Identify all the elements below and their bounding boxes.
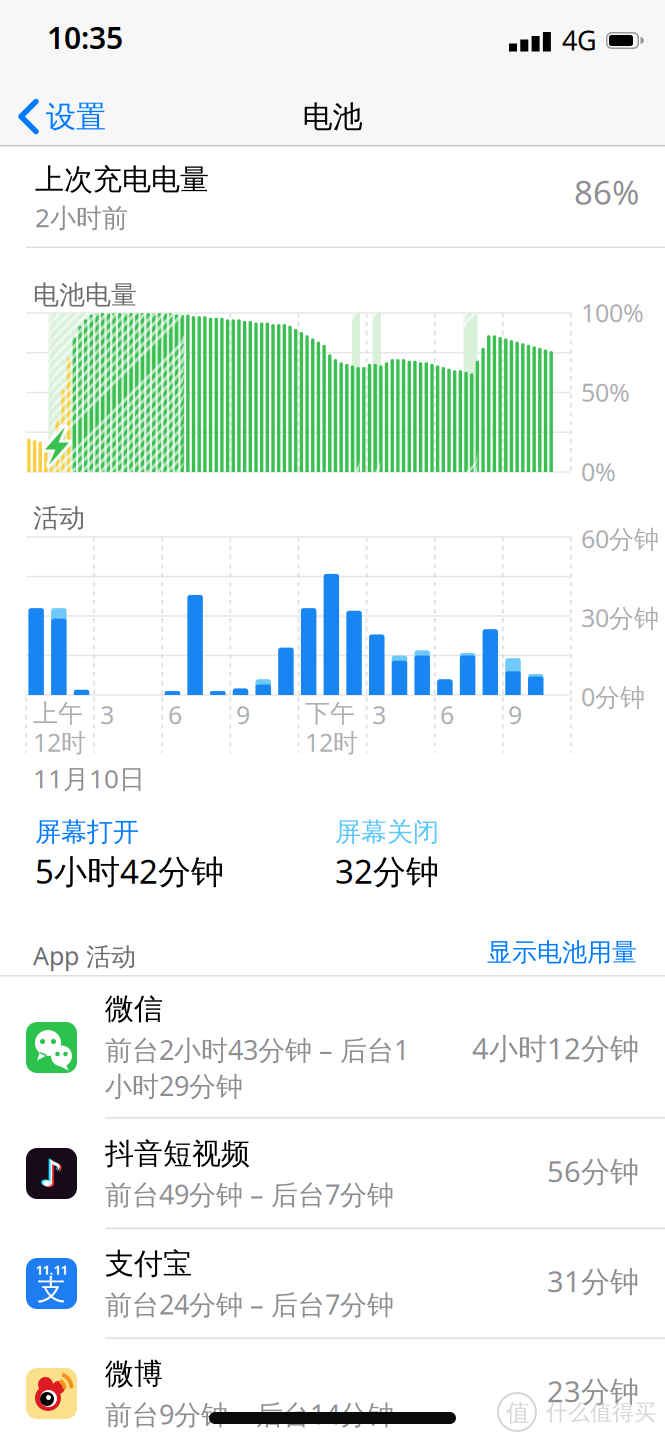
button[interactable]: 设置 (18, 95, 148, 139)
button[interactable]: 屏幕关闭 (335, 816, 439, 848)
staticText: 86% (574, 170, 639, 214)
staticText: 11月10日 (33, 761, 145, 795)
staticText: 100% (581, 296, 644, 329)
staticText: 微信 (105, 991, 163, 1027)
staticText: 电池 (302, 98, 362, 135)
staticText: 前台2小时43分钟 – 后台1 (105, 1032, 409, 1068)
staticText: 6 (168, 698, 182, 731)
staticText: 上次充电电量 (35, 162, 209, 197)
staticText: 23分钟 (547, 1372, 639, 1410)
staticText: ♪ (41, 1154, 64, 1195)
staticText: 60分钟 (581, 522, 659, 555)
staticText: 0% (581, 455, 616, 488)
staticText: App 活动 (33, 939, 136, 972)
staticText: ♪ (40, 1153, 63, 1194)
staticText: 电池电量 (33, 279, 137, 311)
staticText: 30分钟 (581, 601, 659, 634)
staticText: 9 (236, 698, 250, 731)
staticText: 4小时12分钟 (472, 1029, 639, 1067)
button[interactable]: 微博 (0, 0, 665, 1441)
staticText: 4G (562, 22, 597, 58)
staticText: 0分钟 (581, 680, 645, 713)
staticText: 3 (372, 698, 386, 731)
staticText: 小时29分钟 (105, 1068, 243, 1104)
staticText: 3 (100, 698, 114, 731)
staticText: 显示电池用量 (487, 937, 637, 968)
staticText: 32分钟 (335, 849, 439, 893)
button[interactable]: 显示电池用量 (487, 937, 637, 968)
staticText: 10:35 (47, 17, 123, 57)
staticText: 活动 (33, 502, 85, 534)
staticText: 56分钟 (547, 1152, 639, 1190)
staticText: 12时 (305, 725, 358, 759)
staticText: 前台9分钟 – 后台14分钟 (105, 1396, 394, 1432)
button[interactable]: ♪ (0, 0, 665, 1441)
staticText: 支付宝 (105, 1246, 192, 1282)
staticText: 抖音短视频 (105, 1136, 250, 1172)
button[interactable]: 11.11 (0, 0, 665, 1441)
staticText: 前台49分钟 – 后台7分钟 (105, 1176, 394, 1212)
staticText: 2小时前 (35, 200, 128, 234)
staticText: 上午 (33, 698, 83, 729)
staticText: 50% (581, 375, 630, 409)
staticText: 前台24分钟 – 后台7分钟 (105, 1286, 394, 1322)
staticText: 6 (440, 698, 454, 731)
staticText: 12时 (33, 725, 86, 759)
staticText: 9 (508, 698, 522, 731)
staticText: 31分钟 (547, 1262, 639, 1300)
staticText: 微博 (105, 1356, 163, 1392)
staticText: 值 (506, 1398, 530, 1427)
staticText: 支 (37, 1272, 66, 1308)
staticText: 下午 (305, 698, 355, 729)
staticText: 屏幕打开 (35, 816, 139, 848)
staticText: 什么值得买 (546, 1399, 656, 1426)
button[interactable]: 微信 (0, 0, 665, 1441)
button[interactable]: 屏幕打开 (35, 816, 139, 848)
staticText: 屏幕关闭 (335, 816, 439, 848)
staticText: 设置 (46, 98, 106, 135)
staticText: ♪ (38, 1152, 61, 1193)
staticText: 5小时42分钟 (35, 849, 224, 893)
staticText: 11.11 (35, 1261, 67, 1278)
